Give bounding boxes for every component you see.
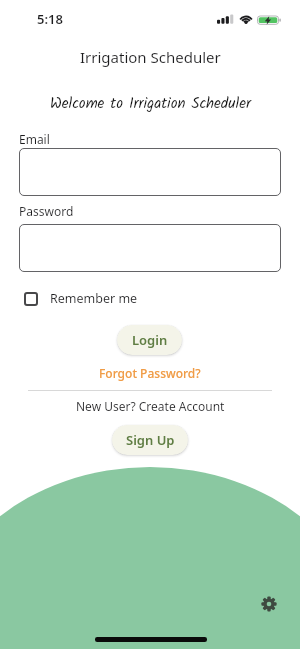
button[interactable]: Login (117, 325, 182, 355)
staticText: Irrigation Scheduler (80, 47, 221, 67)
button[interactable]: Sign Up (112, 425, 188, 455)
staticText: Login (132, 331, 168, 349)
staticText: Welcome to Irrigation Scheduler (50, 92, 251, 116)
staticText: Email (19, 131, 50, 147)
button[interactable] (19, 224, 281, 272)
button[interactable] (19, 148, 281, 196)
staticText: New User? Create Account (76, 398, 225, 414)
staticText: Password (19, 203, 74, 219)
staticText: Remember me (50, 290, 138, 307)
button[interactable]: Forgot Password? (99, 365, 201, 381)
button[interactable]: Remember me (24, 290, 138, 307)
button[interactable] (257, 592, 281, 616)
staticText: Sign Up (126, 431, 175, 449)
staticText: 5:18 (37, 10, 63, 28)
